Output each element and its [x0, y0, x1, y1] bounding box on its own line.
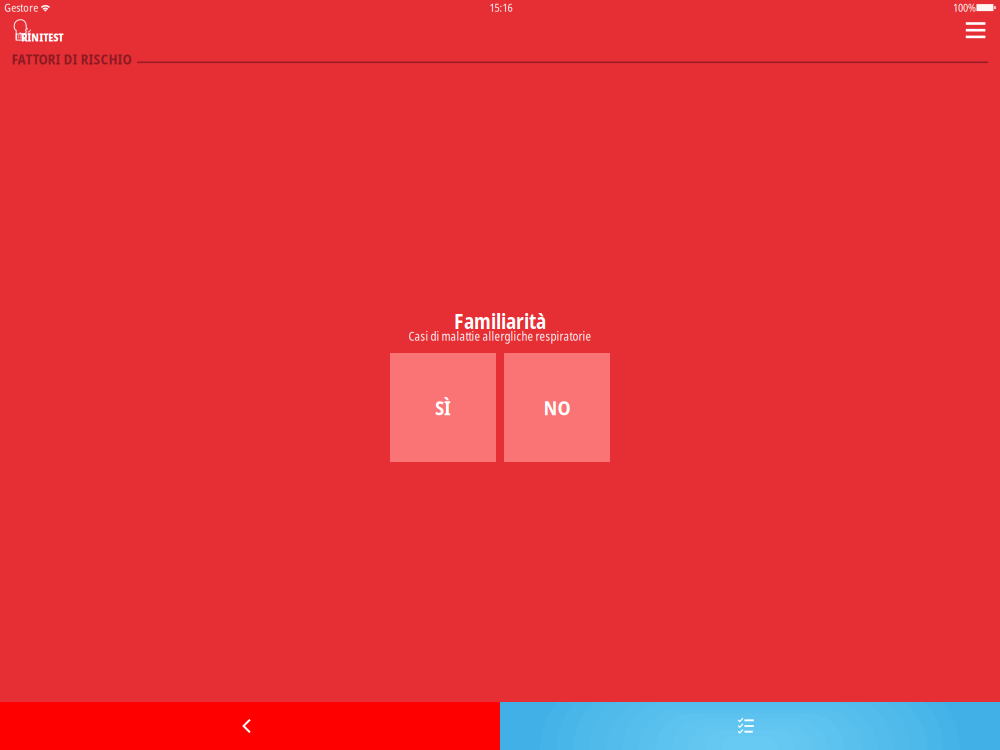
staticText: RINITEST [21, 30, 63, 44]
staticText: SÌ [435, 394, 451, 421]
staticText: Familiarità [454, 307, 546, 335]
staticText: 100% [953, 0, 976, 15]
button[interactable]: SÌ [390, 353, 496, 462]
button[interactable]: Back [0, 702, 500, 750]
staticText: Casi di malattie allergliche respiratori… [408, 328, 591, 344]
staticText: NO [543, 394, 570, 421]
button[interactable]: Menu [952, 9, 1000, 51]
button[interactable]: Summary [500, 702, 1000, 750]
staticText: 15:16 [489, 0, 512, 15]
button[interactable]: NO [504, 353, 610, 462]
staticText: Gestore [4, 0, 38, 15]
staticText: FATTORI DI RISCHIO [11, 49, 131, 69]
